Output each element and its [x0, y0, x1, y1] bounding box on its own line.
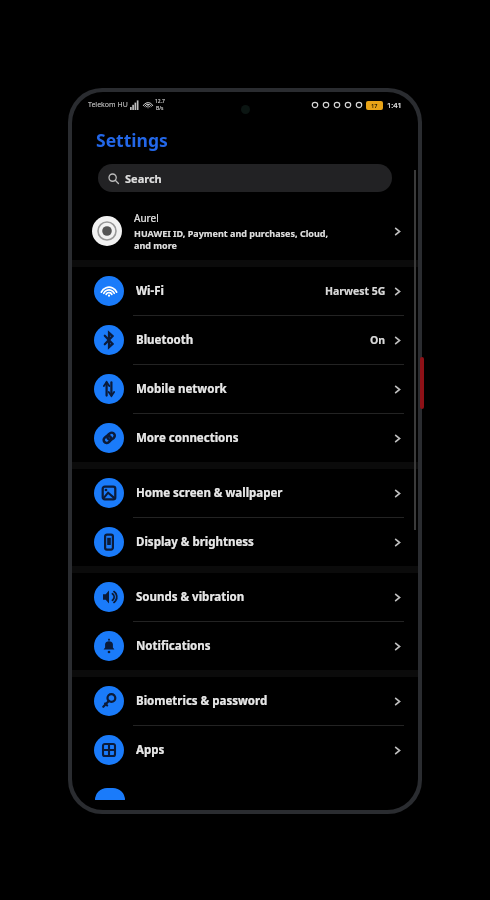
button[interactable]: Wi-Fi [72, 267, 418, 315]
other: Open [391, 487, 404, 500]
staticText: Harwest 5G [325, 284, 386, 298]
button[interactable]: Display & brightness [72, 518, 418, 566]
button[interactable]: Mobile network [72, 365, 418, 413]
staticText: B/s [156, 105, 164, 112]
other: Open [391, 536, 404, 549]
staticText: Display & brightness [136, 534, 391, 550]
staticText: Aurel [134, 211, 159, 225]
button[interactable]: Bluetooth [72, 316, 418, 364]
staticText: Mobile network [136, 381, 391, 397]
button[interactable]: Home screen & wallpaper [72, 469, 418, 517]
button[interactable]: Biometrics & password [72, 677, 418, 725]
staticText: Biometrics & password [136, 693, 391, 709]
other: Open [391, 695, 404, 708]
button[interactable]: More connections [72, 414, 418, 462]
button[interactable]: Apps [72, 726, 418, 774]
other: Open [391, 225, 404, 238]
staticText: Search [125, 171, 162, 186]
staticText: 1:41 [387, 100, 402, 110]
button[interactable]: Notifications [72, 622, 418, 670]
staticText: On [370, 333, 386, 347]
other: Open [391, 591, 404, 604]
other: Open [391, 285, 404, 298]
other: Open [391, 432, 404, 445]
staticText: 12.7 [155, 98, 165, 105]
other: Open [391, 334, 404, 347]
staticText: Sounds & vibration [136, 589, 391, 605]
other: Open [391, 640, 404, 653]
staticText: Apps [136, 742, 391, 758]
staticText: Home screen & wallpaper [136, 485, 391, 501]
button[interactable]: Sounds & vibration [72, 573, 418, 621]
button[interactable]: Search [98, 164, 392, 192]
other: Open [391, 744, 404, 757]
staticText: and more [134, 239, 177, 251]
staticText: 17 [371, 102, 378, 109]
staticText: HUAWEI ID, Payment and purchases, Cloud, [134, 227, 329, 239]
other: Open [391, 383, 404, 396]
staticText: More connections [136, 430, 391, 446]
staticText: Notifications [136, 638, 391, 654]
button[interactable]: Aurel [72, 202, 418, 260]
staticText: Bluetooth [136, 332, 370, 348]
staticText: Settings [96, 128, 168, 152]
staticText: Telekom HU [88, 100, 128, 110]
staticText: Wi-Fi [136, 283, 325, 299]
